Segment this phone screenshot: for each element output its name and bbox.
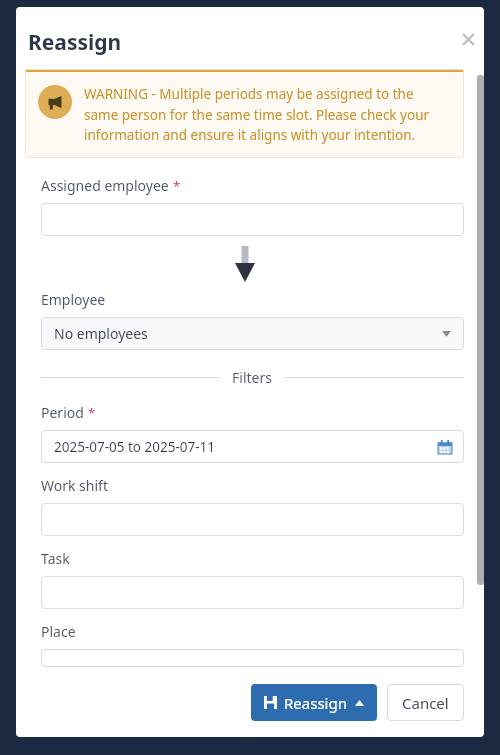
- button[interactable]: Close: [452, 23, 484, 55]
- button[interactable]: [41, 503, 464, 536]
- button[interactable]: [41, 649, 464, 667]
- staticText: No employees: [54, 324, 148, 343]
- staticText: Employee: [41, 290, 106, 309]
- button[interactable]: No employees: [41, 317, 464, 350]
- staticText: Reassign: [284, 693, 347, 713]
- button[interactable]: [41, 576, 464, 609]
- staticText: Work shift: [41, 476, 108, 495]
- staticText: *: [173, 177, 181, 195]
- button[interactable]: 2025-07-05 to 2025-07-11: [41, 430, 464, 463]
- staticText: Cancel: [402, 693, 449, 713]
- button[interactable]: [41, 203, 464, 236]
- staticText: *: [88, 404, 96, 422]
- staticText: Reassign: [28, 28, 122, 57]
- button[interactable]: Reassign: [251, 684, 377, 721]
- button[interactable]: Cancel: [387, 684, 464, 721]
- staticText: WARNING - Multiple periods may be assign…: [84, 85, 450, 144]
- staticText: Task: [41, 549, 70, 568]
- staticText: Filters: [232, 368, 272, 387]
- staticText: Assigned employee: [41, 176, 169, 195]
- staticText: Period: [41, 403, 84, 422]
- staticText: Place: [41, 622, 76, 641]
- staticText: 2025-07-05 to 2025-07-11: [54, 438, 216, 456]
